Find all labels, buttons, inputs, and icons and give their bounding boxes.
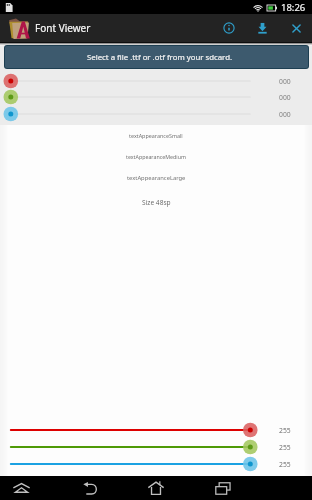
button[interactable]: Info (218, 17, 240, 39)
staticText: 000 (279, 77, 312, 86)
button[interactable]: Download (251, 17, 273, 39)
staticText: Font Viewer (35, 21, 91, 35)
staticText: Size 48sp (142, 198, 171, 207)
staticText: textAppearanceSmall (129, 132, 183, 139)
button[interactable]: Slider 255 (0, 420, 312, 440)
staticText: 18:26 (281, 1, 306, 14)
staticText: 000 (279, 110, 312, 119)
staticText: 255 (279, 443, 312, 452)
button[interactable]: Slider 255 (0, 437, 312, 457)
button[interactable]: Close (285, 17, 307, 39)
button[interactable]: Slider 000 (0, 71, 312, 91)
button[interactable]: Home (144, 476, 168, 500)
button[interactable]: Slider 255 (0, 454, 312, 474)
button[interactable]: Back (78, 476, 102, 500)
staticText: textAppearanceLarge (127, 174, 186, 182)
staticText: 000 (279, 93, 312, 102)
staticText: textAppearanceMedium (126, 153, 186, 160)
button[interactable]: Expand (9, 476, 33, 500)
button[interactable]: Recent apps (211, 476, 235, 500)
staticText: 255 (279, 460, 312, 469)
staticText: Select a file .ttf or .otf from your sdc… (87, 52, 233, 63)
button[interactable]: Select a file .ttf or .otf from your sdc… (4, 45, 309, 69)
button[interactable]: Slider 000 (0, 87, 312, 107)
button[interactable]: Slider 000 (0, 104, 312, 124)
staticText: 255 (279, 426, 312, 435)
